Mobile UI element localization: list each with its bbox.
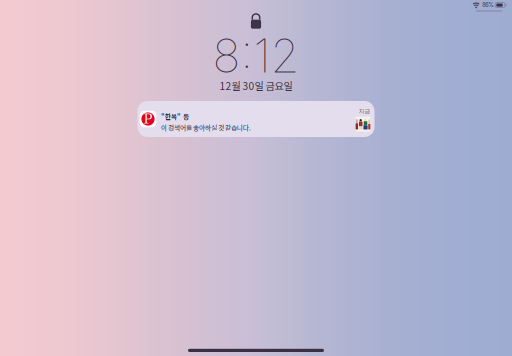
- staticText: 지금: [358, 107, 370, 116]
- staticText: 이 검색어를 좋아하실 것 같습니다.: [161, 123, 251, 132]
- button[interactable]: P: [137, 101, 374, 137]
- staticText: 86%: [482, 2, 493, 8]
- staticText: 8:12: [212, 27, 299, 84]
- staticText: "한복" 등: [161, 111, 189, 121]
- staticText: 12월 30일 금요일: [219, 78, 292, 93]
- staticText: P: [143, 111, 152, 126]
